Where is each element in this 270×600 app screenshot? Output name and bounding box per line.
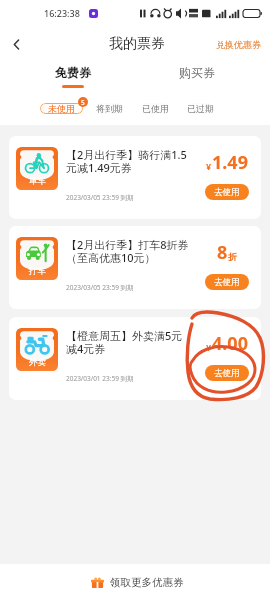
staticText: 8 <box>217 240 228 265</box>
staticText: 我的票券 <box>109 35 165 53</box>
staticText: 5 <box>81 98 85 107</box>
staticText: 1.49 <box>212 150 248 175</box>
staticText: 未使用 <box>48 103 75 114</box>
staticText: 2023/03/05 23:59 到期 <box>66 193 134 202</box>
staticText: 打车 <box>29 266 46 277</box>
staticText: 已过期 <box>187 103 214 114</box>
button[interactable]: 外卖 <box>9 317 261 400</box>
button[interactable]: 购买券 <box>135 65 259 80</box>
staticText: 折 <box>228 251 237 262</box>
staticText: 2023/03/05 23:59 到期 <box>66 283 134 292</box>
staticText: 购买券 <box>179 65 215 80</box>
staticText: 将到期 <box>96 103 123 114</box>
button[interactable]: Back <box>3 31 29 57</box>
staticText: 去使用 <box>214 368 240 379</box>
button[interactable]: 将到期 <box>96 103 123 114</box>
staticText: 【2月出行季】骑行满1.5元减1.49元券 <box>66 147 190 175</box>
staticText: 领取更多优惠券 <box>110 576 184 589</box>
staticText: 16:23:38 <box>44 7 80 19</box>
staticText: 去使用 <box>214 277 240 288</box>
button[interactable]: 免费券 <box>11 65 135 88</box>
button[interactable]: 单车 <box>9 136 261 219</box>
staticText: 单车 <box>29 176 46 187</box>
staticText: 外卖 <box>29 357 46 368</box>
button[interactable]: 领取更多优惠券 <box>0 564 270 600</box>
staticText: 2023/03/01 23:59 到期 <box>66 374 134 383</box>
staticText: 去使用 <box>214 187 240 198</box>
button[interactable]: 去使用 <box>205 184 249 200</box>
staticText: 兑换优惠券 <box>216 39 261 50</box>
staticText: 免费券 <box>55 65 91 80</box>
staticText: ¥ <box>206 341 212 353</box>
button[interactable]: 去使用 <box>205 365 249 381</box>
button[interactable]: 已过期 <box>187 103 214 114</box>
staticText: 4.00 <box>212 331 248 356</box>
button[interactable]: 去使用 <box>205 274 249 290</box>
staticText: 已使用 <box>142 103 169 114</box>
button[interactable]: 未使用 <box>40 103 83 114</box>
staticText: 【2月出行季】打车8折券（至高优惠10元） <box>66 237 190 265</box>
button[interactable]: 打车 <box>9 226 261 309</box>
button[interactable]: 已使用 <box>142 103 169 114</box>
button[interactable]: 兑换优惠券 <box>210 39 270 50</box>
staticText: ¥ <box>206 160 212 172</box>
staticText: 【橙意周五】外卖满5元减4元券 <box>66 328 190 356</box>
